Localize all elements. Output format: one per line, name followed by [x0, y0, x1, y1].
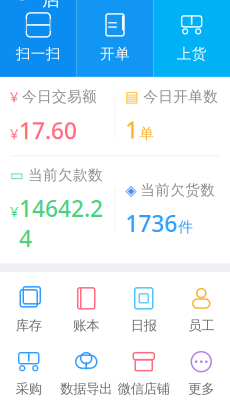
- staticText: 扫一扫: [16, 45, 61, 63]
- staticText: 17.60: [19, 115, 77, 145]
- button[interactable]: 账本: [57, 278, 115, 342]
- staticText: 14642.24: [19, 193, 103, 253]
- staticText: ◈: [125, 182, 136, 198]
- button[interactable]: 日报: [115, 278, 172, 342]
- button[interactable]: 更多: [172, 342, 230, 405]
- staticText: 当前欠款数: [28, 166, 103, 184]
- staticText: 今日交易额: [22, 88, 97, 106]
- staticText: 1: [125, 115, 138, 145]
- staticText: ¥: [10, 87, 18, 106]
- staticText: 数据导出: [60, 381, 112, 397]
- staticText: ▤: [125, 88, 139, 105]
- button[interactable]: 数据导出: [57, 342, 115, 405]
- staticText: 当前欠货数: [140, 181, 215, 199]
- staticText: ¥: [10, 124, 18, 143]
- staticText: ▭: [10, 167, 24, 183]
- staticText: 库存: [16, 317, 42, 334]
- button[interactable]: 微信店铺: [115, 342, 172, 405]
- staticText: 日报: [131, 317, 157, 334]
- staticText: 微信店铺: [118, 381, 170, 397]
- staticText: 件: [178, 218, 193, 236]
- button[interactable]: 员工: [172, 278, 230, 342]
- staticText: 开单: [100, 45, 130, 63]
- staticText: 订货无忧长沙店: [42, 0, 156, 11]
- staticText: 1736: [125, 208, 177, 238]
- staticText: 采购: [16, 381, 42, 397]
- button[interactable]: 采购: [0, 342, 57, 405]
- staticText: 今日开单数: [143, 88, 218, 106]
- staticText: ¥: [10, 201, 18, 221]
- button[interactable]: 库存: [0, 278, 57, 342]
- button[interactable]: 上货: [153, 7, 230, 67]
- staticText: 单: [139, 125, 154, 143]
- button[interactable]: 开单: [77, 7, 153, 67]
- button[interactable]: 扫一扫: [0, 7, 77, 67]
- staticText: 账本: [73, 317, 99, 334]
- staticText: 上货: [177, 45, 207, 63]
- staticText: 更多: [188, 381, 214, 397]
- staticText: 员工: [188, 317, 214, 334]
